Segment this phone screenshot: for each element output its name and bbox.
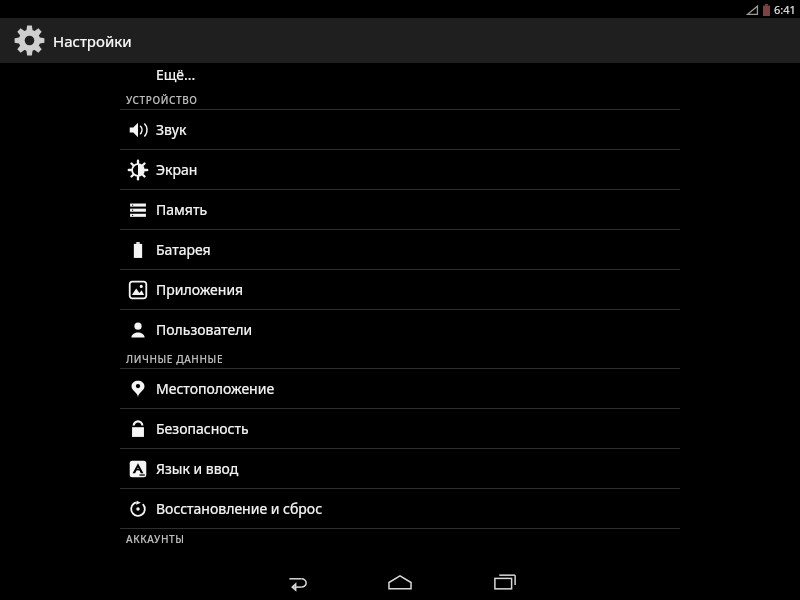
staticText: Восстановление и сброс xyxy=(156,499,323,518)
staticText: АККАУНТЫ xyxy=(126,532,185,545)
button[interactable]: Восстановление и сброс xyxy=(120,489,680,528)
button[interactable]: Экран xyxy=(120,150,680,189)
button[interactable]: Память xyxy=(120,190,680,229)
button[interactable]: Приложения xyxy=(120,270,680,309)
button[interactable]: Батарея xyxy=(120,230,680,269)
staticText: 6:41 xyxy=(774,2,796,17)
staticText: Память xyxy=(156,200,208,219)
button[interactable]: Back xyxy=(276,562,316,600)
other: Settings xyxy=(14,25,45,56)
staticText: Звук xyxy=(156,120,187,139)
button[interactable]: Звук xyxy=(120,110,680,149)
button[interactable]: Ещё... xyxy=(120,63,680,90)
button[interactable]: Безопасность xyxy=(120,409,680,448)
staticText: ЛИЧНЫЕ ДАННЫЕ xyxy=(126,352,224,366)
staticText: Экран xyxy=(156,160,198,179)
button[interactable]: Settings xyxy=(0,18,800,63)
staticText: Приложения xyxy=(156,280,244,299)
button[interactable]: Местоположение xyxy=(120,369,680,408)
staticText: Местоположение xyxy=(156,379,275,398)
button[interactable]: Язык и ввод xyxy=(120,449,680,488)
button[interactable]: Recent apps xyxy=(485,562,525,600)
staticText: Батарея xyxy=(156,240,211,259)
staticText: Настройки xyxy=(53,31,132,51)
button[interactable]: Home xyxy=(380,562,420,600)
staticText: Пользователи xyxy=(156,320,253,339)
staticText: Ещё... xyxy=(156,65,196,84)
staticText: Безопасность xyxy=(156,419,249,438)
staticText: УСТРОЙСТВО xyxy=(126,93,198,107)
staticText: Язык и ввод xyxy=(156,459,239,478)
button[interactable]: Пользователи xyxy=(120,310,680,349)
